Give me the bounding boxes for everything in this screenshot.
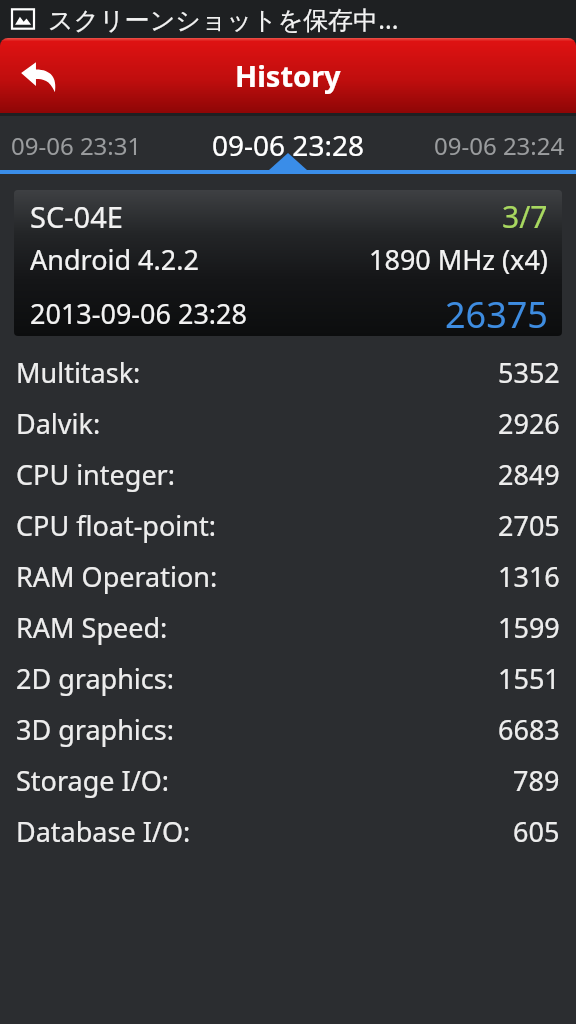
button[interactable]: CPU float-point: [0, 500, 576, 551]
staticText: Android 4.2.2 [30, 241, 369, 278]
staticText: RAM Operation: [16, 558, 218, 595]
staticText: Database I/O: [16, 813, 191, 850]
button[interactable]: Storage I/O: [0, 755, 576, 806]
staticText: 1551 [498, 660, 560, 697]
staticText: Dalvik: [16, 405, 101, 442]
staticText: Storage I/O: [16, 762, 170, 799]
button[interactable]: 3D graphics: [0, 704, 576, 755]
button[interactable]: RAM Operation: [0, 551, 576, 602]
staticText: 1890 MHz (x4) [369, 241, 548, 278]
staticText: 1316 [498, 558, 560, 595]
staticText: SC-04E [30, 197, 502, 236]
staticText: 2013-09-06 23:28 [30, 295, 445, 332]
staticText: 789 [513, 762, 560, 799]
staticText: スクリーンショットを保存中... [48, 2, 399, 36]
staticText: 2926 [498, 405, 560, 442]
staticText: History [235, 56, 341, 95]
staticText: 3D graphics: [16, 711, 174, 748]
staticText: 09-06 23:28 [212, 126, 364, 164]
staticText: RAM Speed: [16, 609, 168, 646]
button[interactable]: Multitask: [0, 347, 576, 398]
staticText: 3/7 [502, 196, 548, 237]
staticText: 26375 [445, 290, 548, 336]
staticText: 2705 [498, 507, 560, 544]
button[interactable]: Back [8, 45, 70, 107]
button[interactable]: 09-06 23:24 [390, 116, 576, 175]
staticText: 605 [513, 813, 560, 850]
button[interactable]: Dalvik: [0, 398, 576, 449]
staticText: CPU float-point: [16, 507, 216, 544]
button[interactable]: 09-06 23:28 [186, 116, 390, 175]
staticText: 1599 [498, 609, 560, 646]
staticText: 6683 [498, 711, 560, 748]
staticText: 2D graphics: [16, 660, 174, 697]
button[interactable]: Database I/O: [0, 806, 576, 857]
button[interactable]: 09-06 23:31 [0, 116, 186, 175]
staticText: CPU integer: [16, 456, 176, 493]
staticText: 09-06 23:31 [11, 129, 142, 162]
staticText: Multitask: [16, 354, 141, 391]
button[interactable]: CPU integer: [0, 449, 576, 500]
staticText: 5352 [498, 354, 560, 391]
button[interactable]: 2D graphics: [0, 653, 576, 704]
staticText: 2849 [498, 456, 560, 493]
staticText: 09-06 23:24 [434, 129, 565, 162]
button[interactable]: SC-04E [14, 190, 562, 336]
other: Screenshot [12, 8, 34, 30]
button[interactable]: RAM Speed: [0, 602, 576, 653]
